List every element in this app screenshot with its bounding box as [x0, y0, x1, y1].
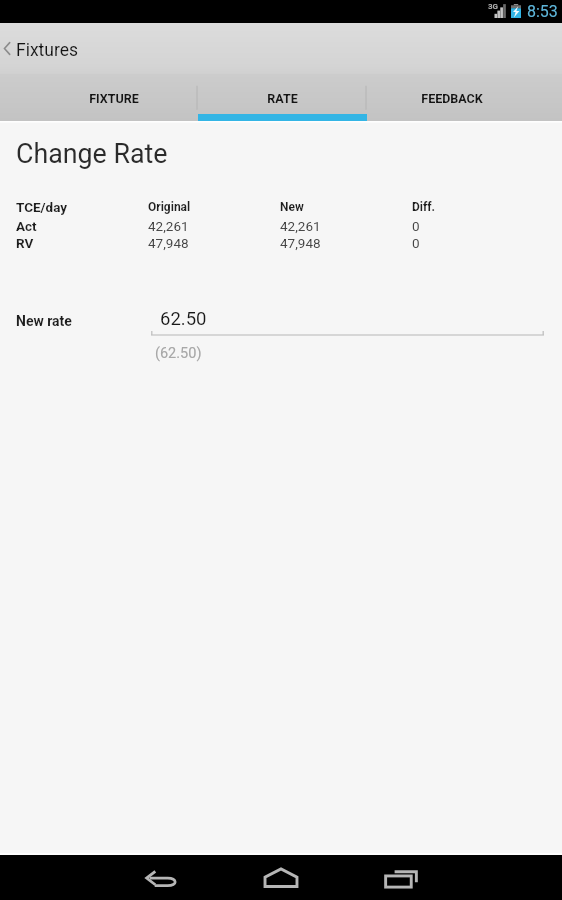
staticText: 47,948 [280, 235, 412, 251]
staticText: RV [16, 235, 148, 251]
staticText: 42,261 [280, 218, 412, 234]
staticText: Change Rate [16, 138, 168, 169]
button[interactable]: 62.50 [151, 303, 544, 325]
button[interactable]: FEEDBACK [367, 74, 536, 121]
staticText: Diff. [412, 200, 436, 214]
other: Navigate up [0, 23, 14, 74]
staticText: Original [148, 200, 280, 214]
button[interactable]: FIXTURE [30, 74, 198, 121]
button[interactable]: Recent apps [371, 857, 431, 900]
staticText: 8:53 [527, 2, 558, 21]
staticText: FEEDBACK [421, 91, 483, 106]
button[interactable]: Back [132, 858, 191, 900]
staticText: New [280, 200, 412, 214]
staticText: TCE/day [16, 199, 148, 215]
staticText: RATE [267, 91, 298, 106]
staticText: 42,261 [148, 218, 280, 234]
staticText: 0 [412, 235, 420, 251]
staticText: 3G [488, 2, 499, 11]
staticText: New rate [16, 313, 151, 329]
staticText: 62.50 [160, 308, 207, 330]
staticText: 47,948 [148, 235, 280, 251]
staticText: (62.50) [155, 345, 202, 362]
staticText: 0 [412, 218, 420, 234]
staticText: Fixtures [16, 40, 79, 61]
button[interactable]: RATE [198, 74, 367, 121]
staticText: FIXTURE [89, 91, 139, 106]
button[interactable]: Navigate up [0, 23, 79, 74]
button[interactable]: Home [250, 855, 312, 900]
staticText: Act [16, 218, 148, 234]
